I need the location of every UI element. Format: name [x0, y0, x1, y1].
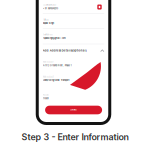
staticText: Step 3 - Enter Information: [21, 132, 128, 142]
button[interactable]: Add Address Details(Optional): [43, 49, 104, 52]
staticText: Lobby/Wing/What Transport: [43, 79, 70, 82]
staticText: Address Line 1: [43, 61, 54, 63]
staticText: rupaksingh@gmail.com: [43, 37, 66, 39]
staticText: Local Mobile Number: [43, 4, 57, 6]
staticText: A-17/2 Ground Floor, Phase 1: [43, 64, 72, 67]
staticText: Pin code: [43, 94, 49, 96]
staticText: CONTINUE: [70, 109, 77, 111]
staticText: Address Line 2: [43, 76, 54, 78]
staticText: 110001: [43, 97, 49, 100]
staticText: Rupak Singh: [43, 22, 54, 25]
staticText: Email Address: [43, 34, 53, 36]
staticText: Full Name: [43, 19, 49, 21]
staticText: +91 9876543210: [43, 7, 58, 10]
button[interactable]: CONTINUE: [45, 106, 102, 114]
staticText: Add Address Details(Optional): [43, 49, 87, 52]
